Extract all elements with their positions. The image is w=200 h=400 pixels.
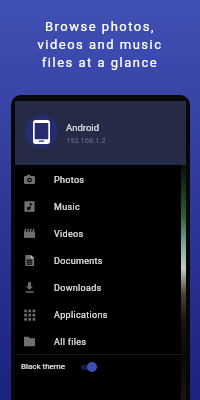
other: Music [24,201,35,212]
staticText: Photos [54,175,85,186]
button[interactable]: Music [15,192,181,219]
button[interactable]: Videos [15,219,181,246]
staticText: Downloads [54,283,102,294]
button[interactable]: Photos [15,165,181,192]
other: Black theme [81,360,103,372]
staticText: Browse photos, videos and music files at… [0,19,200,70]
staticText: Videos [54,229,84,240]
other: Documents [24,255,35,266]
staticText: Music [54,202,80,213]
button[interactable]: Black theme [15,355,181,377]
button[interactable]: Downloads [15,273,181,300]
button[interactable]: Documents [15,246,181,273]
staticText: Black theme [21,362,66,371]
staticText: All files [54,337,87,348]
other: Downloads [24,282,35,293]
staticText: Documents [54,256,103,267]
button[interactable]: Android [15,101,181,165]
button[interactable]: Applications [15,300,181,327]
other: Videos [24,228,35,239]
staticText: Android [66,122,100,133]
staticText: 192.168.1.2 [66,136,106,145]
button[interactable]: All files [15,327,181,354]
other: All files [24,336,35,347]
staticText: Applications [54,310,108,321]
other: Photos [24,174,35,185]
other: Applications [24,309,35,320]
